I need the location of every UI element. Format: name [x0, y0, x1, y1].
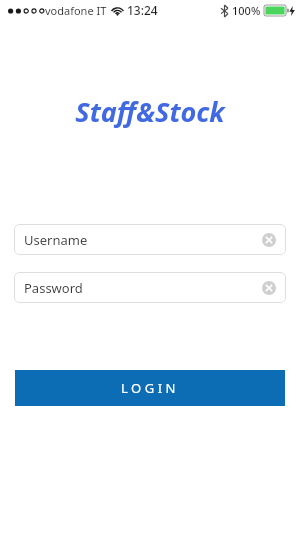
staticText: Username [24, 231, 258, 249]
button[interactable]: LOGIN [15, 370, 285, 406]
staticText: 13:24 [127, 2, 158, 18]
button[interactable]: Clear text [258, 277, 280, 299]
staticText: vodafone IT [45, 3, 107, 18]
staticText: 100% [232, 3, 261, 18]
button[interactable]: Username [14, 224, 286, 255]
staticText: LOGIN [121, 379, 179, 397]
button[interactable]: Password [14, 272, 286, 303]
staticText: Staff&Stock [0, 93, 300, 130]
button[interactable]: Clear text [258, 229, 280, 251]
staticText: Password [24, 279, 258, 297]
